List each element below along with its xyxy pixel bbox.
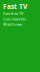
staticText: Fast free TV [3,11,23,16]
staticText: Live channels [3,16,26,21]
staticText: Watch now [3,21,22,27]
staticText: Fast TV [3,2,27,11]
